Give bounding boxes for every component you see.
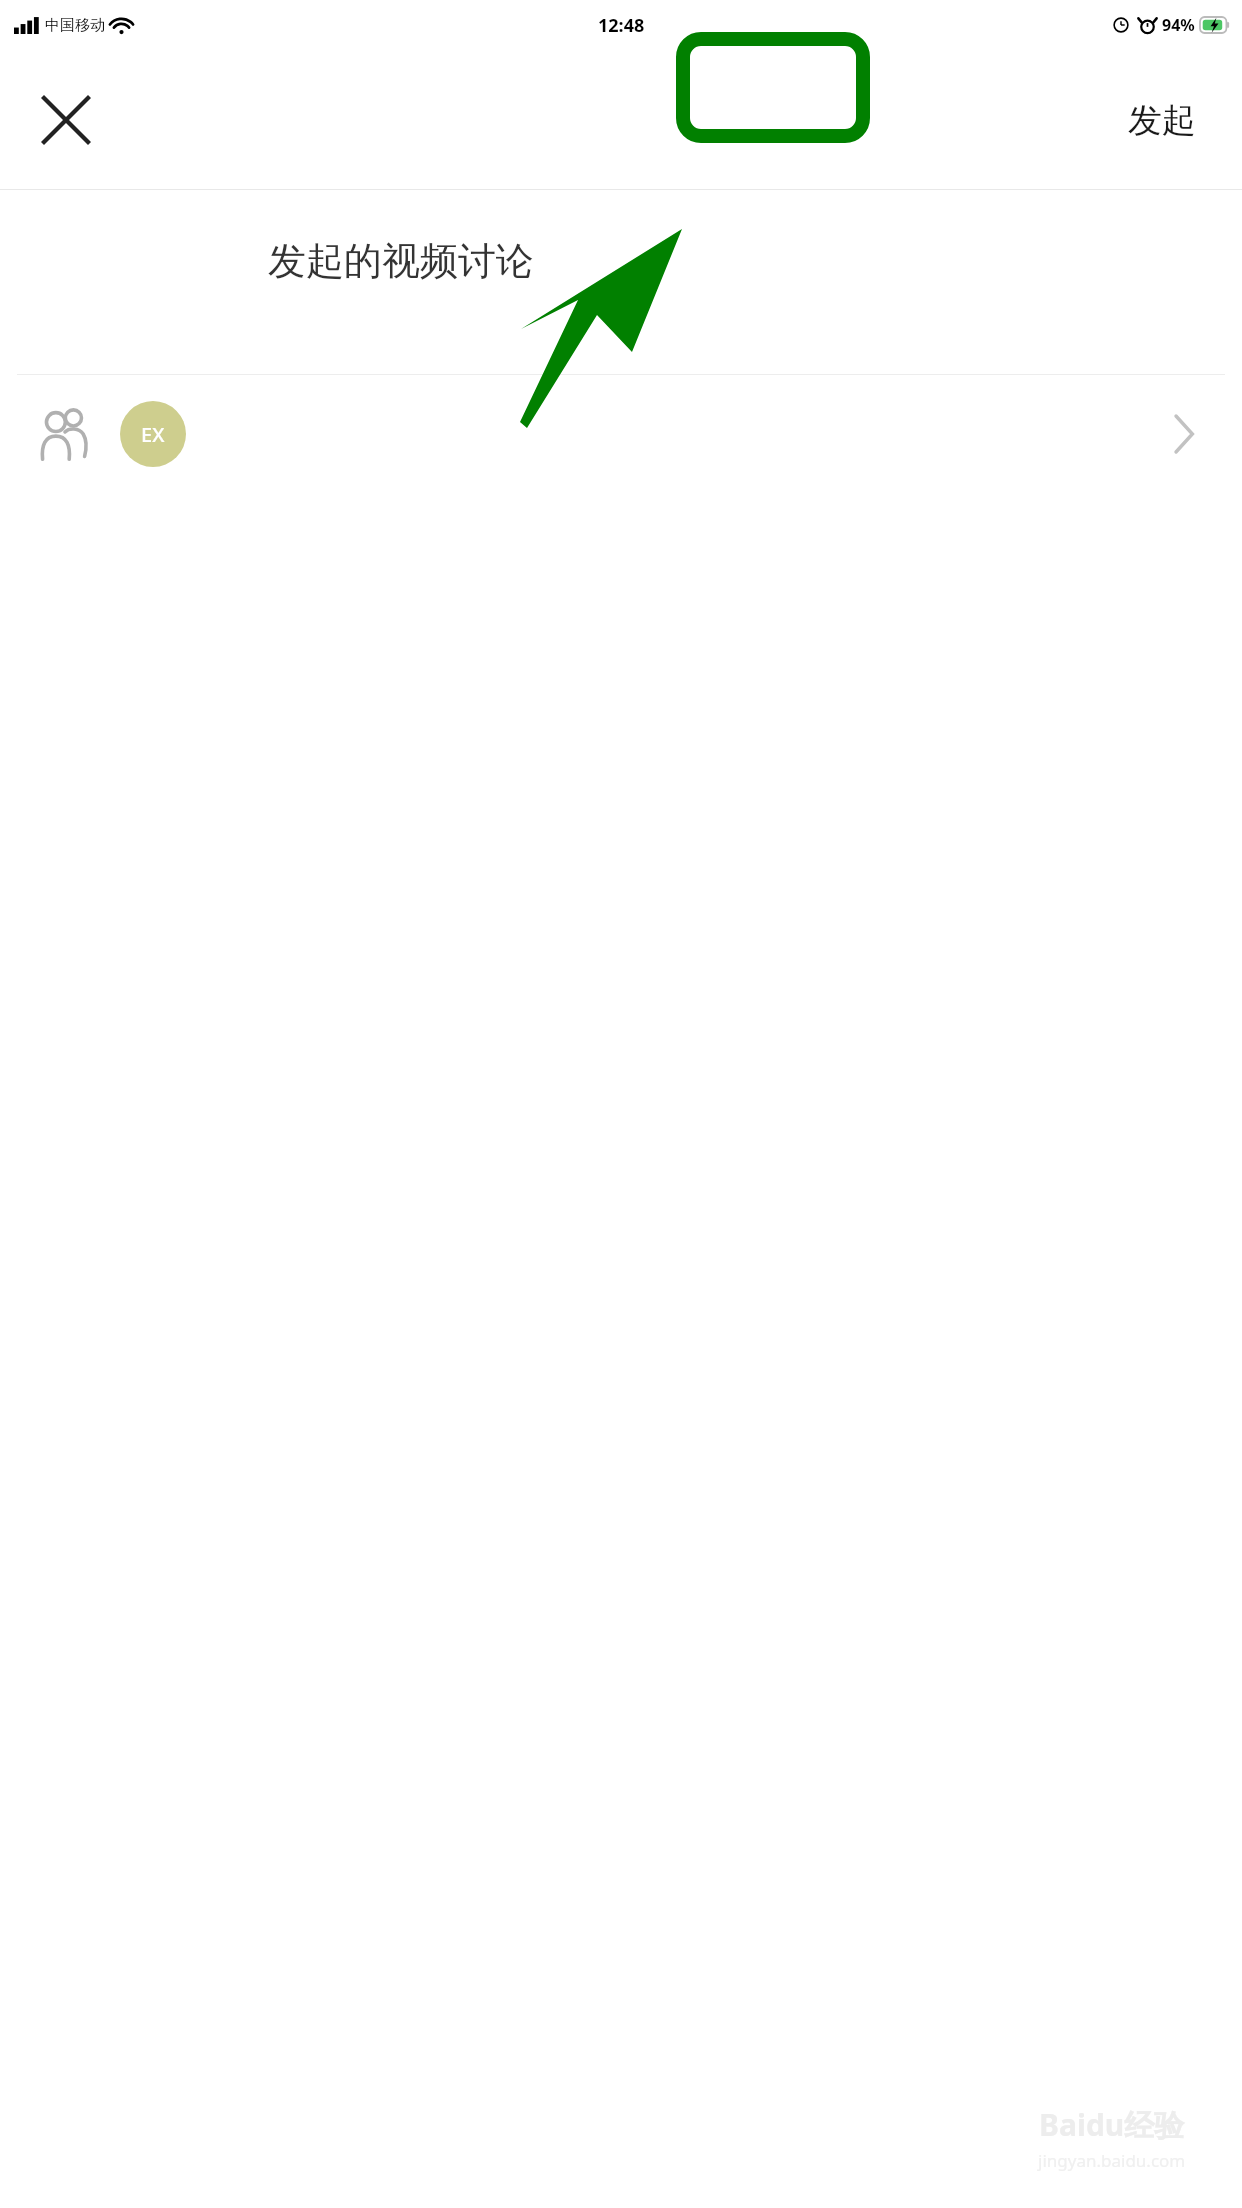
staticText: 发起 [1128,99,1196,142]
staticText: 中国移动 [45,16,105,35]
staticText: EX [141,421,165,448]
staticText: Baidu经验 [1039,2104,1185,2145]
staticText: jingyan.baidu.com [1038,2149,1186,2172]
other: 更多 [1156,406,1212,462]
button[interactable]: 关闭 [30,84,102,156]
button[interactable]: EX [0,375,1242,493]
staticText: 发起的视频讨论 [268,237,534,285]
staticText: 12:48 [598,13,645,38]
button[interactable]: 发起 [1116,85,1208,156]
staticText: 94% [1162,14,1195,36]
